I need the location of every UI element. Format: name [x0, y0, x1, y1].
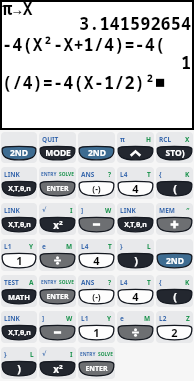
staticText: K [185, 170, 190, 179]
button[interactable]: key [117, 132, 154, 163]
staticText: π→X [2, 0, 33, 20]
staticText: 4 [93, 253, 100, 268]
staticText: L4 [120, 170, 128, 179]
staticText: QUIT [42, 135, 59, 144]
staticText: LINK [4, 314, 20, 323]
staticText: ( [173, 289, 177, 304]
button[interactable]: ( [156, 167, 193, 199]
staticText: X,T,θ,n [8, 184, 31, 194]
staticText: W [105, 206, 112, 215]
staticText: I [70, 206, 73, 215]
staticText: √ [42, 206, 47, 214]
button[interactable]: 4 [78, 239, 115, 271]
staticText: } [120, 242, 123, 251]
staticText: A [29, 278, 34, 287]
staticText: SOLVE [59, 279, 74, 286]
staticText: √ [42, 350, 47, 358]
button[interactable]: ENTER [78, 347, 115, 379]
button[interactable]: divide [39, 239, 76, 271]
button[interactable]: 1 [78, 311, 115, 343]
staticText: L1 [4, 242, 12, 251]
button[interactable]: 2 [156, 311, 193, 343]
button[interactable]: x² [39, 347, 76, 379]
staticText: I [70, 350, 73, 359]
button[interactable]: X,T,θ,n [117, 203, 154, 235]
staticText: ] [81, 206, 84, 215]
staticText: x² [53, 362, 63, 376]
button[interactable]: divide [117, 311, 154, 343]
button[interactable]: ENTER [39, 167, 76, 199]
staticText: Y [29, 242, 34, 251]
button[interactable]: x² [39, 203, 76, 235]
staticText: } [4, 350, 7, 359]
button[interactable]: ENTER [39, 275, 76, 307]
staticText: X,T,θ,n [124, 220, 147, 230]
staticText: ENTRY [41, 171, 57, 178]
staticText: 4 [132, 289, 139, 304]
staticText: 2ND [10, 147, 28, 159]
button[interactable]: MODE [39, 132, 76, 163]
staticText: (-) [92, 291, 101, 303]
staticText: T [108, 242, 112, 251]
staticText: LINK [4, 206, 20, 215]
staticText: 2 [171, 325, 178, 340]
button[interactable]: minus [39, 311, 76, 343]
staticText: 2ND [166, 255, 184, 267]
staticText: TEST [4, 278, 19, 287]
staticText: X,T,θ,n [8, 220, 31, 230]
staticText: -4(X²-X+1/4)=-4( [2, 33, 166, 56]
button[interactable]: MATH [1, 275, 37, 307]
staticText: e [120, 314, 124, 323]
staticText: X [185, 135, 190, 144]
staticText: ANS [81, 278, 95, 287]
staticText: ) [134, 253, 138, 268]
button[interactable]: 1 [1, 239, 37, 271]
button[interactable]: 4 [117, 167, 154, 199]
button[interactable]: 2ND [156, 239, 193, 271]
staticText: ( [173, 181, 177, 196]
staticText: LINK [4, 170, 20, 179]
button[interactable]: minus [78, 203, 115, 235]
button[interactable]: ) [117, 239, 154, 271]
staticText: 1 [181, 51, 192, 74]
staticText: H [146, 135, 151, 144]
staticText: L [147, 242, 151, 251]
button[interactable]: ( [156, 275, 193, 307]
staticText: 2ND [88, 147, 106, 159]
staticText: L2 [159, 314, 167, 323]
staticText: Y [107, 314, 112, 323]
staticText: X,T,θ,n [8, 328, 31, 338]
button[interactable]: (-) [78, 167, 115, 199]
staticText: { [159, 278, 162, 287]
button[interactable]: STO) [156, 132, 193, 163]
staticText: L [30, 350, 34, 359]
staticText: SOLVE [98, 351, 113, 358]
staticText: (/4)=-4(X-1/2)²■ [2, 71, 166, 94]
button[interactable]: 2ND [1, 132, 37, 163]
staticText: L1 [81, 314, 89, 323]
button[interactable]: X,T,θ,n [1, 167, 37, 199]
button[interactable]: 4 [117, 275, 154, 307]
staticText: T [147, 278, 151, 287]
staticText: ? [108, 170, 112, 179]
button[interactable]: plus [156, 203, 193, 235]
button[interactable]: (-) [78, 275, 115, 307]
staticText: e [42, 242, 46, 251]
staticText: π [120, 135, 125, 144]
staticText: L4 [120, 278, 128, 287]
staticText: W [66, 314, 73, 323]
button[interactable]: 2ND [78, 132, 115, 163]
staticText: Z [186, 314, 190, 323]
button[interactable]: ) [1, 347, 37, 379]
staticText: ENTER [46, 292, 69, 302]
staticText: ENTRY [41, 279, 57, 286]
staticText: SOLVE [59, 171, 74, 178]
staticText: T [147, 170, 151, 179]
staticText: RCL [159, 135, 172, 144]
button[interactable]: X,T,θ,n [1, 203, 37, 235]
staticText: 4 [132, 181, 139, 196]
staticText: ENTER [85, 364, 108, 374]
staticText: ) [17, 361, 21, 376]
staticText: M [66, 242, 73, 251]
button[interactable]: X,T,θ,n [1, 311, 37, 343]
